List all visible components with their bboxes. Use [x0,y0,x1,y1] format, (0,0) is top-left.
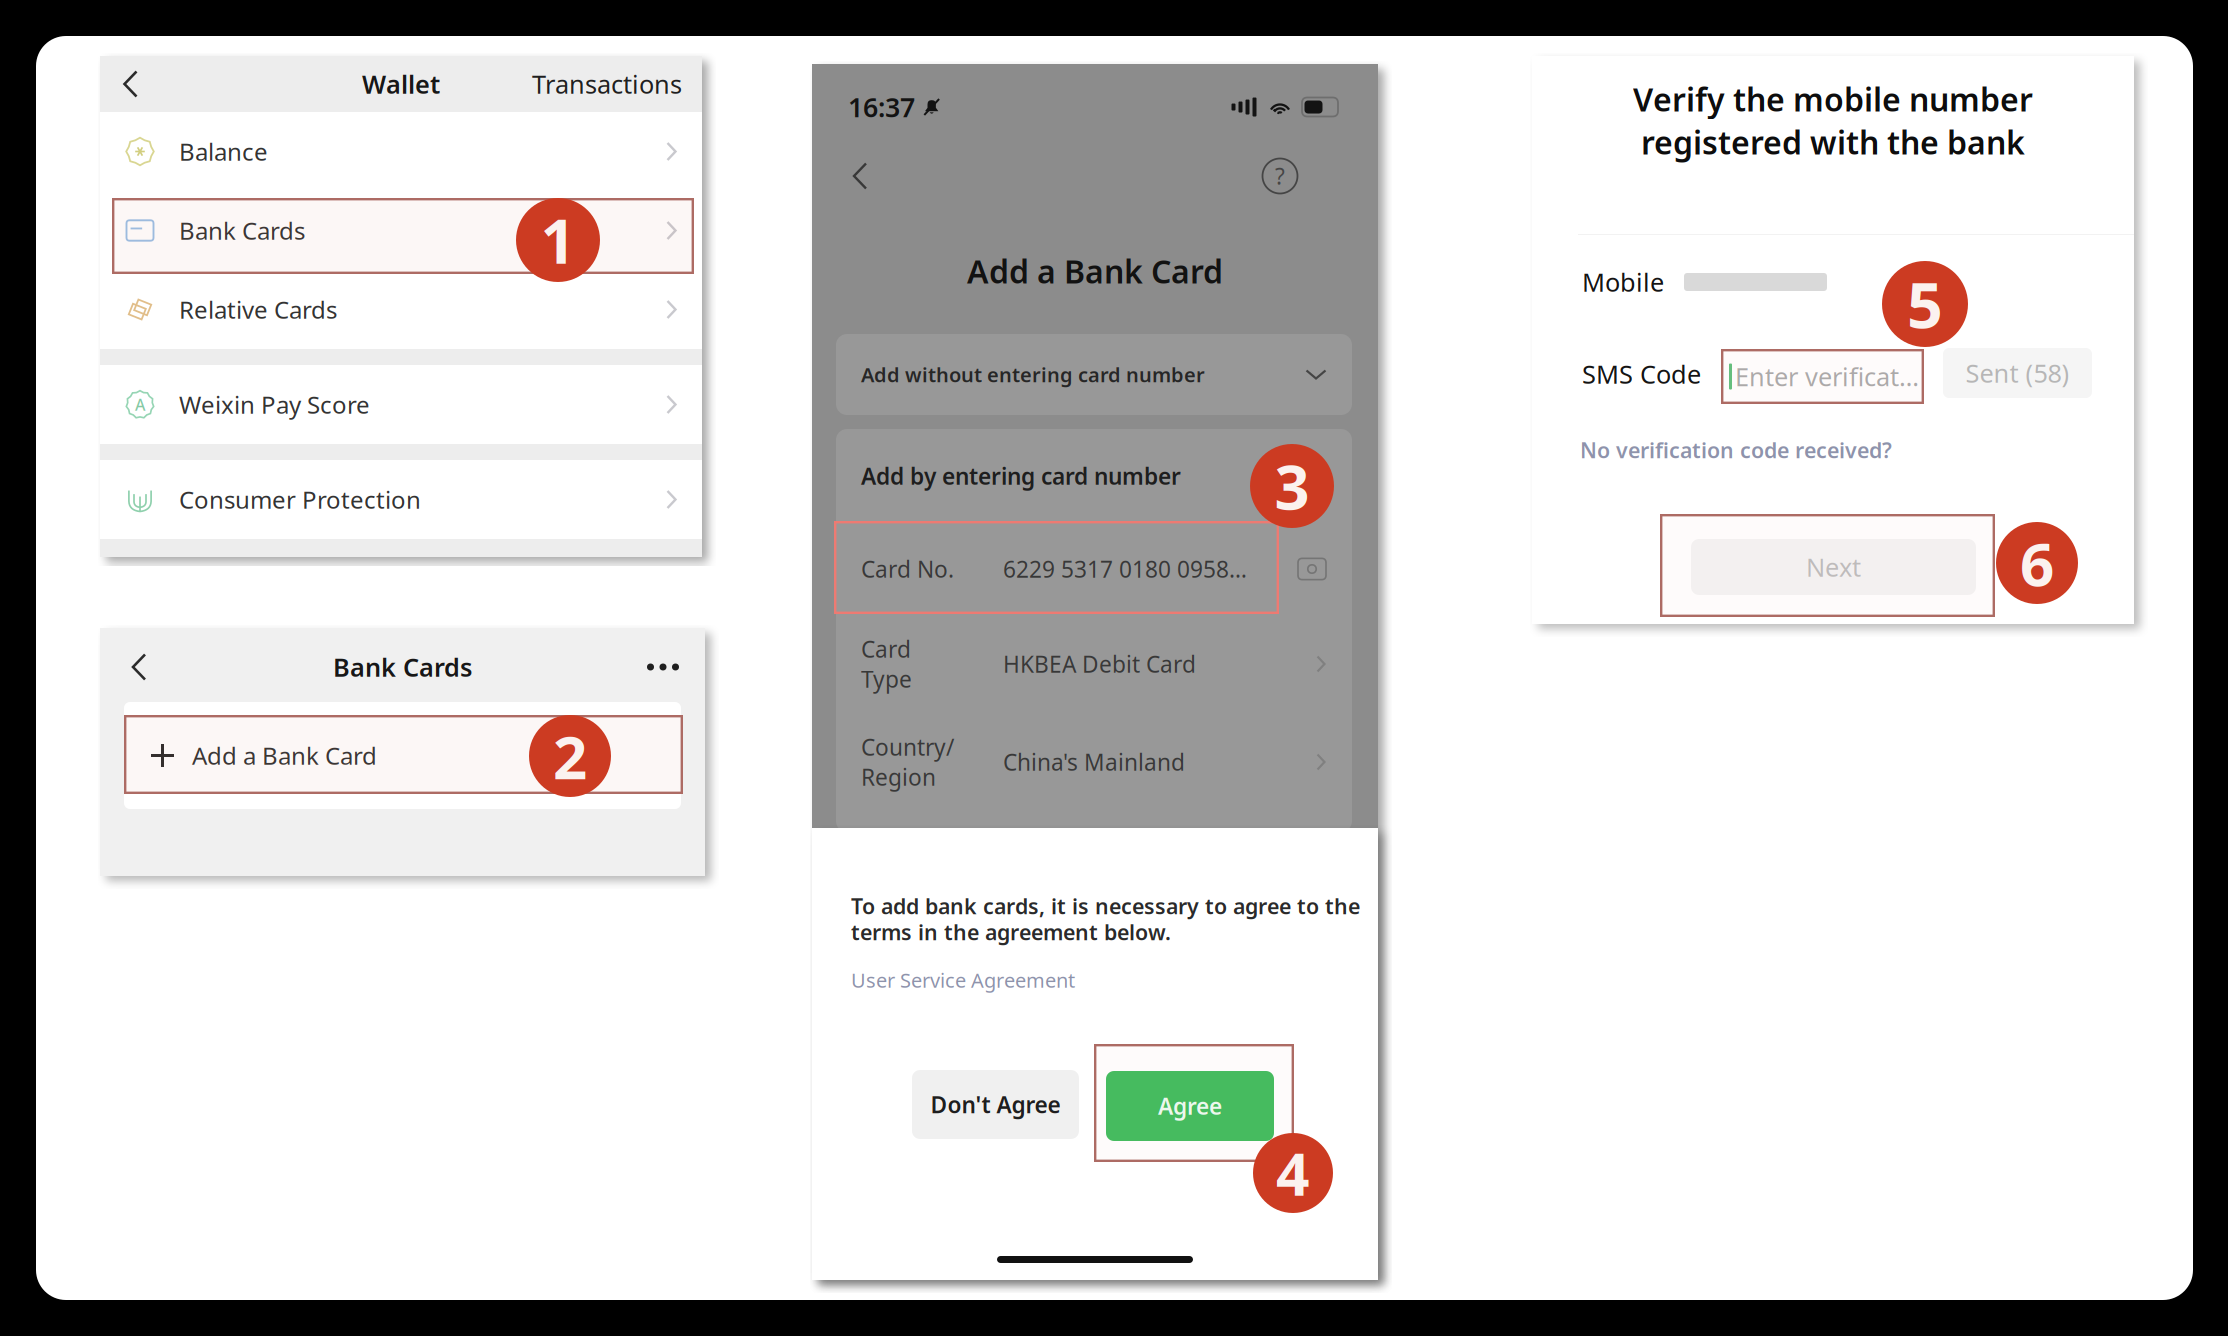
staticText: 1 [540,199,575,281]
staticText: Card No. [861,554,954,584]
button[interactable]: Back [100,56,169,112]
staticText: Add by entering card number [861,461,1181,491]
staticText: 2 [553,716,587,796]
button[interactable]: Back [116,644,162,690]
staticText: Next [1806,550,1861,584]
staticText: Weixin Pay Score [179,389,370,420]
staticText: registered with the bank [1641,121,2025,163]
button[interactable]: Country/ Region [836,713,1352,811]
staticText: Bank Cards [179,215,305,246]
staticText: 3 [1274,445,1309,527]
staticText: China's Mainland [1003,747,1185,777]
button[interactable]: Enter verificat… [1721,349,1932,404]
staticText: Bank Cards [333,650,472,684]
staticText: 4 [1276,1134,1310,1212]
staticText: To add bank cards, it is necessary to ag… [851,892,1360,920]
button[interactable]: Back [838,154,882,198]
button[interactable]: Bank Cards [100,191,702,270]
button[interactable]: Card Type [836,615,1352,713]
staticText: 6229 5317 0180 0958… [1003,554,1247,584]
staticText: Transactions [532,67,682,101]
staticText: SMS Code [1582,357,1701,391]
staticText: Card Type [861,634,912,694]
staticText: Add a Bank Card [967,250,1223,292]
button[interactable]: Transactions [532,67,702,101]
staticText: ? [1275,161,1285,191]
staticText: 6 [2020,523,2054,603]
staticText: Enter verificat… [1735,360,1919,393]
staticText: Add without entering card number [861,361,1205,388]
staticText: Consumer Protection [179,484,421,515]
staticText: Country/ Region [861,732,954,792]
button[interactable]: Add a Bank Card [124,702,681,809]
button[interactable]: Next [1532,56,1817,112]
staticText: Mobile [1582,265,1664,299]
staticText: 5 [1907,262,1943,346]
staticText: Verify the mobile number [1633,78,2033,120]
staticText: Sent (58) [1965,356,2069,390]
staticText: Balance [179,136,268,167]
staticText: 16:37 [848,89,915,125]
button[interactable]: Add without entering card number [836,334,1352,415]
staticText: Relative Cards [179,294,337,325]
button[interactable]: More options [640,644,686,690]
button[interactable]: Sent (58) [1943,348,2092,398]
staticText: Agree [1158,1091,1222,1121]
button[interactable]: Balance [100,112,702,191]
staticText: User Service Agreement [851,967,1075,993]
button[interactable]: Card No. [836,523,1352,615]
staticText: terms in the agreement below. [851,918,1171,946]
button[interactable]: Relative Cards [100,270,702,349]
staticText: Add a Bank Card [192,740,377,771]
staticText: A [135,394,145,415]
button[interactable]: Consumer Protection [100,460,702,539]
button[interactable]: Help [1258,154,1302,198]
staticText: Don't Agree [930,1089,1060,1119]
button[interactable]: A [100,365,702,444]
staticText: No verification code received? [1580,436,1892,464]
staticText: Wallet [362,67,440,101]
staticText: HKBEA Debit Card [1003,649,1196,679]
